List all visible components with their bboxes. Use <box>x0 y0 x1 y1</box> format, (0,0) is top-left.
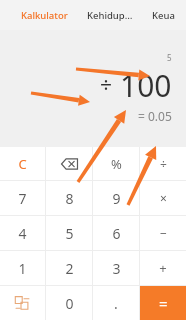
button[interactable]: 0 <box>46 286 92 320</box>
button[interactable]: 4 <box>0 216 45 250</box>
staticText: 0 <box>65 294 74 313</box>
staticText: 7 <box>18 189 27 208</box>
staticText: % <box>111 155 122 173</box>
staticText: = <box>159 293 168 313</box>
button[interactable]: Keua <box>152 9 175 22</box>
staticText: C <box>18 155 27 173</box>
button[interactable]: Kehidup… <box>87 9 133 22</box>
staticText: ÷ <box>100 71 113 100</box>
button[interactable]: . <box>93 286 139 320</box>
button[interactable]: 7 <box>0 181 45 215</box>
button[interactable]: % <box>93 147 139 180</box>
staticText: 9 <box>112 189 121 208</box>
button[interactable]: 2 <box>46 251 92 285</box>
staticText: 1 <box>18 259 27 278</box>
button[interactable]: 1 <box>0 251 45 285</box>
staticText: 6 <box>112 224 121 243</box>
button[interactable]: Converter <box>0 286 45 320</box>
staticText: ÷ <box>160 156 167 172</box>
button[interactable]: 8 <box>46 181 92 215</box>
staticText: 5 <box>65 224 74 243</box>
staticText: Keua <box>152 9 175 22</box>
staticText: − <box>160 225 167 241</box>
button[interactable]: ÷ <box>140 147 186 180</box>
button[interactable]: 3 <box>93 251 139 285</box>
button[interactable]: − <box>140 216 186 250</box>
staticText: 5 <box>167 52 172 63</box>
staticText: 4 <box>18 224 27 243</box>
button[interactable]: 6 <box>93 216 139 250</box>
button[interactable]: 9 <box>93 181 139 215</box>
button[interactable]: 5 <box>46 216 92 250</box>
staticText: = 0.05 <box>138 108 172 124</box>
staticText: Kalkulator <box>21 9 68 22</box>
staticText: . <box>114 294 118 313</box>
button[interactable]: Backspace <box>46 147 92 180</box>
staticText: + <box>159 259 167 277</box>
button[interactable]: × <box>140 181 186 215</box>
staticText: 2 <box>65 259 74 278</box>
button[interactable]: + <box>140 251 186 285</box>
button[interactable]: Kalkulator <box>21 9 68 22</box>
button[interactable]: C <box>0 147 45 180</box>
button[interactable]: = <box>140 286 186 320</box>
staticText: 8 <box>65 189 74 208</box>
staticText: 3 <box>112 259 121 278</box>
staticText: Kehidup… <box>87 9 133 22</box>
staticText: 100 <box>120 65 172 106</box>
staticText: × <box>160 190 167 206</box>
